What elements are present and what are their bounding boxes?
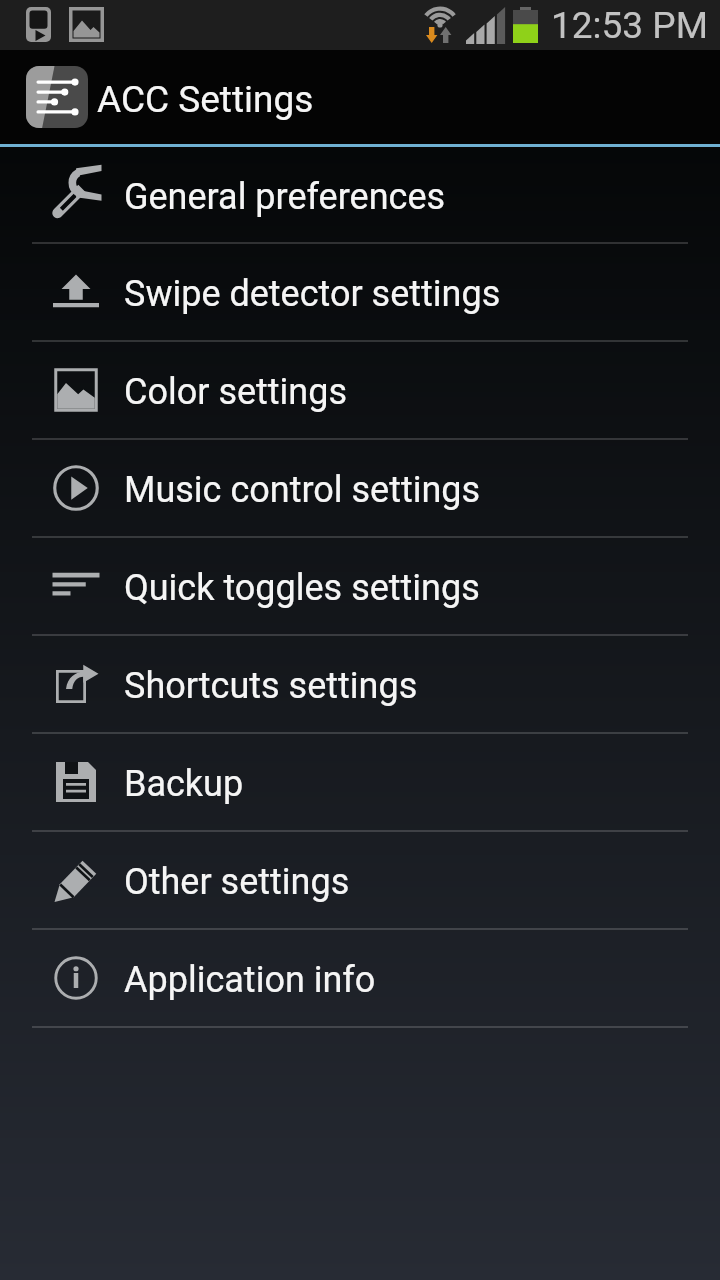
staticText: Backup xyxy=(124,763,244,805)
staticText: Color settings xyxy=(124,371,348,413)
staticText: Other settings xyxy=(124,861,350,903)
button[interactable]: General preferences xyxy=(0,147,720,242)
button[interactable]: ACC Settings, navigate up xyxy=(0,50,720,144)
staticText: Swipe detector settings xyxy=(124,273,501,315)
button[interactable]: Application info xyxy=(0,930,720,1026)
staticText: ACC Settings xyxy=(97,78,314,121)
button[interactable]: Quick toggles settings xyxy=(0,538,720,634)
staticText: General preferences xyxy=(124,176,446,218)
staticText: Music control settings xyxy=(124,469,481,511)
button[interactable]: Color settings xyxy=(0,342,720,438)
button[interactable]: Other settings xyxy=(0,832,720,928)
staticText: Quick toggles settings xyxy=(124,567,480,609)
staticText: Shortcuts settings xyxy=(124,665,418,707)
button[interactable]: Music control settings xyxy=(0,440,720,536)
button[interactable]: Swipe detector settings xyxy=(0,244,720,340)
button[interactable]: Backup xyxy=(0,734,720,830)
button[interactable]: Shortcuts settings xyxy=(0,636,720,732)
staticText: 12:53 PM xyxy=(551,4,708,47)
staticText: Application info xyxy=(124,959,376,1001)
